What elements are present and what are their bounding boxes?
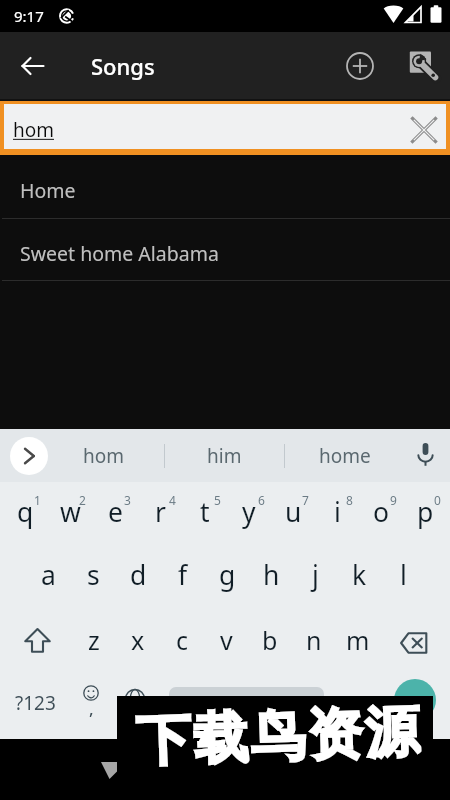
staticText: Home <box>20 177 76 204</box>
button[interactable]: e <box>93 482 138 545</box>
staticText: t <box>200 494 210 530</box>
staticText: , <box>89 697 94 720</box>
button[interactable]: c <box>160 608 204 671</box>
button[interactable]: j <box>293 545 337 608</box>
button[interactable]: a <box>26 545 71 608</box>
staticText: r <box>155 494 166 530</box>
staticText: s <box>87 557 100 593</box>
staticText: hom <box>83 443 125 469</box>
staticText: a <box>41 557 56 593</box>
button[interactable]: s <box>71 545 116 608</box>
button[interactable]: hom <box>44 429 164 482</box>
staticText: d <box>130 557 147 593</box>
staticText: z <box>88 623 100 657</box>
staticText: 2 <box>79 492 86 508</box>
staticText: c <box>176 623 189 657</box>
staticText: k <box>352 557 367 593</box>
staticText: x <box>131 623 145 657</box>
staticText: i <box>334 494 341 530</box>
button[interactable]: him <box>165 429 284 482</box>
button[interactable]: f <box>161 545 205 608</box>
button[interactable]: b <box>248 608 292 671</box>
button[interactable]: Space <box>158 671 335 737</box>
button[interactable]: u <box>271 482 315 545</box>
button[interactable]: Clear <box>402 108 446 152</box>
button[interactable]: w <box>48 482 93 545</box>
button[interactable]: More suggestions <box>10 437 48 475</box>
staticText: b <box>262 623 278 657</box>
button[interactable]: . <box>335 671 380 737</box>
staticText: p <box>417 494 434 530</box>
button[interactable]: Emoji <box>68 671 114 737</box>
button[interactable]: ?123 <box>4 671 68 737</box>
button[interactable]: Hide keyboard <box>87 748 131 792</box>
button[interactable]: i <box>315 482 359 545</box>
staticText: 0 <box>434 492 441 508</box>
button[interactable]: n <box>292 608 336 671</box>
staticText: him <box>207 443 242 469</box>
button[interactable]: k <box>337 545 381 608</box>
staticText: q <box>17 494 34 530</box>
staticText: j <box>312 557 319 593</box>
staticText: y <box>242 494 256 530</box>
staticText: 下载鸟资源 <box>134 697 422 775</box>
button[interactable]: l <box>381 545 425 608</box>
staticText: 3 <box>124 492 131 508</box>
button[interactable]: t <box>183 482 227 545</box>
button[interactable]: Voice input <box>403 432 447 476</box>
button[interactable]: Change language <box>112 671 158 737</box>
button[interactable]: Add <box>336 42 384 90</box>
button[interactable]: r <box>138 482 183 545</box>
staticText: v <box>220 623 233 657</box>
staticText: Sweet home Alabama <box>20 240 219 267</box>
button[interactable]: p <box>403 482 447 545</box>
button[interactable]: Home <box>0 155 450 219</box>
staticText: 7 <box>302 492 309 508</box>
button[interactable]: y <box>227 482 271 545</box>
button[interactable]: z <box>71 608 116 671</box>
staticText: 6 <box>258 492 265 508</box>
staticText: n <box>306 623 322 657</box>
staticText: l <box>400 557 407 593</box>
staticText: . <box>355 689 361 719</box>
staticText: 9:17 <box>14 6 44 26</box>
button[interactable]: Enter <box>380 671 450 737</box>
staticText: g <box>219 557 236 593</box>
staticText: e <box>108 494 123 530</box>
staticText: hom <box>13 117 55 143</box>
staticText: w <box>60 494 81 530</box>
staticText: h <box>263 557 280 593</box>
button[interactable]: Back <box>9 42 57 90</box>
staticText: 5 <box>214 492 221 508</box>
staticText: m <box>346 623 370 657</box>
button[interactable]: m <box>336 608 380 671</box>
button[interactable]: d <box>116 545 161 608</box>
button[interactable]: hom <box>4 104 446 149</box>
button[interactable]: x <box>116 608 160 671</box>
button[interactable]: q <box>3 482 48 545</box>
staticText: f <box>178 557 188 593</box>
button[interactable]: Shift <box>3 608 71 671</box>
staticText: ?123 <box>15 690 56 716</box>
staticText: o <box>373 494 390 530</box>
button[interactable]: g <box>205 545 249 608</box>
button[interactable]: v <box>204 608 248 671</box>
staticText: u <box>285 494 302 530</box>
staticText: home <box>319 443 371 469</box>
button[interactable]: Search settings <box>395 42 443 90</box>
button[interactable]: Sweet home Alabama <box>0 219 450 281</box>
staticText: Songs <box>91 51 155 81</box>
button[interactable]: home <box>285 429 404 482</box>
staticText: 9 <box>390 492 397 508</box>
staticText: 8 <box>346 492 353 508</box>
staticText: 4 <box>169 492 176 508</box>
button[interactable]: o <box>359 482 403 545</box>
button[interactable]: Backspace <box>380 608 447 671</box>
staticText: 1 <box>34 492 41 508</box>
button[interactable]: h <box>249 545 293 608</box>
